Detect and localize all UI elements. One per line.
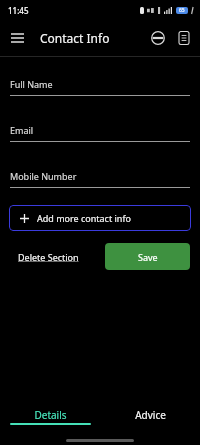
button[interactable]: Email	[0, 124, 200, 142]
staticText: Full Name	[10, 78, 53, 90]
staticText: Mobile Number	[10, 170, 77, 182]
button[interactable]: Mobile Number	[0, 170, 200, 188]
button[interactable]: Advice	[100, 401, 200, 436]
button[interactable]: Add more contact info	[9, 205, 191, 231]
button[interactable]: Delete Section	[10, 247, 87, 267]
button[interactable]: Full Name	[0, 78, 200, 96]
button[interactable]: Menu	[4, 25, 30, 51]
staticText: Add more contact info	[37, 212, 131, 224]
button[interactable]: Save	[105, 243, 190, 270]
staticText: 11:45	[8, 5, 29, 16]
staticText: Delete Section	[18, 251, 79, 263]
staticText: Details	[34, 408, 67, 422]
staticText: Email	[10, 124, 34, 136]
button[interactable]: Details	[0, 401, 100, 436]
staticText: Save	[138, 251, 158, 263]
button[interactable]: Scan	[147, 27, 169, 49]
staticText: 65	[179, 7, 185, 14]
button[interactable]: Document	[173, 27, 195, 49]
staticText: Advice	[135, 408, 166, 422]
staticText: Contact Info	[40, 30, 110, 46]
